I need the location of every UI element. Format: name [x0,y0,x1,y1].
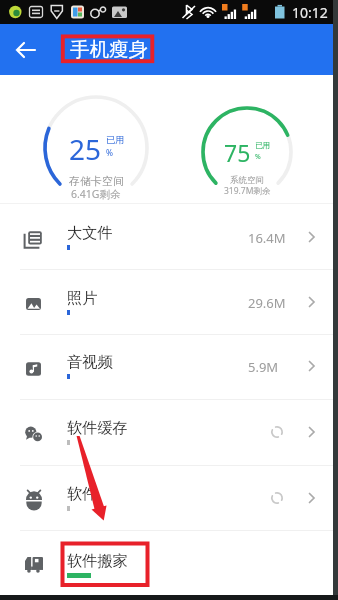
staticText: % [255,152,261,161]
staticText: 已用 [255,141,271,151]
staticText: 29.6M [248,294,286,312]
staticText: 手机瘦身 [70,37,148,62]
staticText: 已用 [106,134,125,146]
staticText: 音视频 [67,352,113,371]
staticText: 25 [69,130,102,168]
staticText: 319.7M剩余 [224,185,271,197]
staticText: 照片 [67,288,98,307]
button[interactable]: 照片 [0,270,338,335]
button[interactable]: 软件缓存 [0,400,338,466]
staticText: 大文件 [67,223,113,242]
staticText: 系统空间 [230,175,264,186]
staticText: 6.41G剩余 [71,187,121,201]
staticText: 5.9M [248,358,279,376]
button[interactable]: 大文件 [0,205,338,270]
staticText: 75 [224,137,251,168]
staticText: 16.4M [248,229,286,247]
staticText: % [106,147,113,158]
button[interactable]: 软件 [0,466,338,531]
staticText: 软件缓存 [67,418,128,437]
staticText: 软件 [67,484,98,503]
staticText: 存储卡空间 [69,174,124,188]
button[interactable]: 音视频 [0,334,338,400]
staticText: 10:12 [292,3,328,22]
button[interactable]: 软件搬家 [0,531,338,600]
staticText: 软件搬家 [67,551,128,570]
button[interactable]: Back [4,28,48,72]
